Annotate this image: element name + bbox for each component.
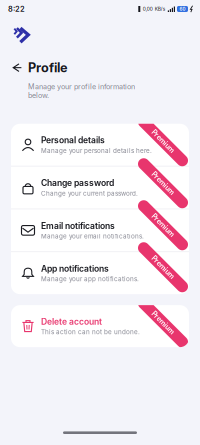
button[interactable]: Change password (11, 167, 189, 209)
staticText: Change your current password. (41, 190, 138, 197)
staticText: KB/s (155, 6, 166, 12)
button[interactable]: Email notifications (11, 209, 189, 251)
button[interactable]: Delete account (11, 305, 189, 347)
staticText: Profile (28, 60, 68, 75)
staticText: Premium (148, 179, 177, 187)
staticText: 0,00 (143, 6, 153, 12)
staticText: Manage your email notifications. (41, 232, 144, 240)
staticText: Change password (41, 178, 114, 188)
staticText: Manage your profile information below. (28, 82, 135, 100)
staticText: Personal details (41, 135, 105, 145)
staticText: Premium (148, 318, 177, 327)
staticText: This action can not be undone. (41, 328, 140, 336)
staticText: Premium (148, 221, 177, 229)
button[interactable]: Back (0, 49, 68, 75)
staticText: Manage your personal details here. (41, 147, 152, 154)
staticText: Premium (148, 137, 177, 145)
staticText: Delete account (41, 316, 102, 327)
staticText: Email notifications (41, 221, 115, 231)
staticText: App notifications (41, 263, 109, 274)
staticText: Premium (148, 263, 177, 271)
staticText: 60 (179, 6, 185, 12)
staticText: 8:22 (8, 4, 25, 13)
button[interactable]: Personal details (11, 124, 189, 166)
button[interactable]: App notifications (11, 252, 189, 294)
staticText: Manage your app notifications. (41, 275, 139, 283)
